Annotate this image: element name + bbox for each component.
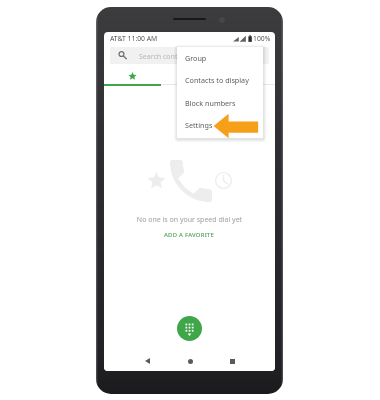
staticText: Settings (185, 120, 213, 130)
button[interactable]: Block numbers (177, 92, 263, 114)
button[interactable]: Contacts tab (218, 68, 275, 85)
staticText: 100% (253, 34, 271, 43)
staticText: ADD A FAVORITE (164, 231, 215, 239)
button[interactable]: Group (177, 47, 263, 69)
staticText: Search contacts & places (139, 52, 221, 62)
button[interactable]: Search contacts & places (110, 47, 269, 64)
staticText: No one is on your speed dial yet (104, 215, 275, 225)
button[interactable]: Open dialpad (177, 316, 202, 341)
button[interactable]: Home (180, 351, 200, 371)
button[interactable]: Favourites tab (104, 68, 161, 85)
button[interactable]: ADD A FAVORITE (156, 229, 223, 241)
staticText: Block numbers (185, 98, 236, 108)
button[interactable]: Back (137, 351, 157, 371)
staticText: AT&T 11:00 AM (110, 34, 158, 43)
button[interactable]: Contacts to display (177, 69, 263, 91)
staticText: Group (185, 53, 207, 63)
button[interactable]: Recents tab (161, 68, 218, 85)
button[interactable]: Settings (177, 114, 263, 136)
staticText: Contacts to display (185, 75, 249, 85)
button[interactable]: Recent apps (222, 351, 242, 371)
